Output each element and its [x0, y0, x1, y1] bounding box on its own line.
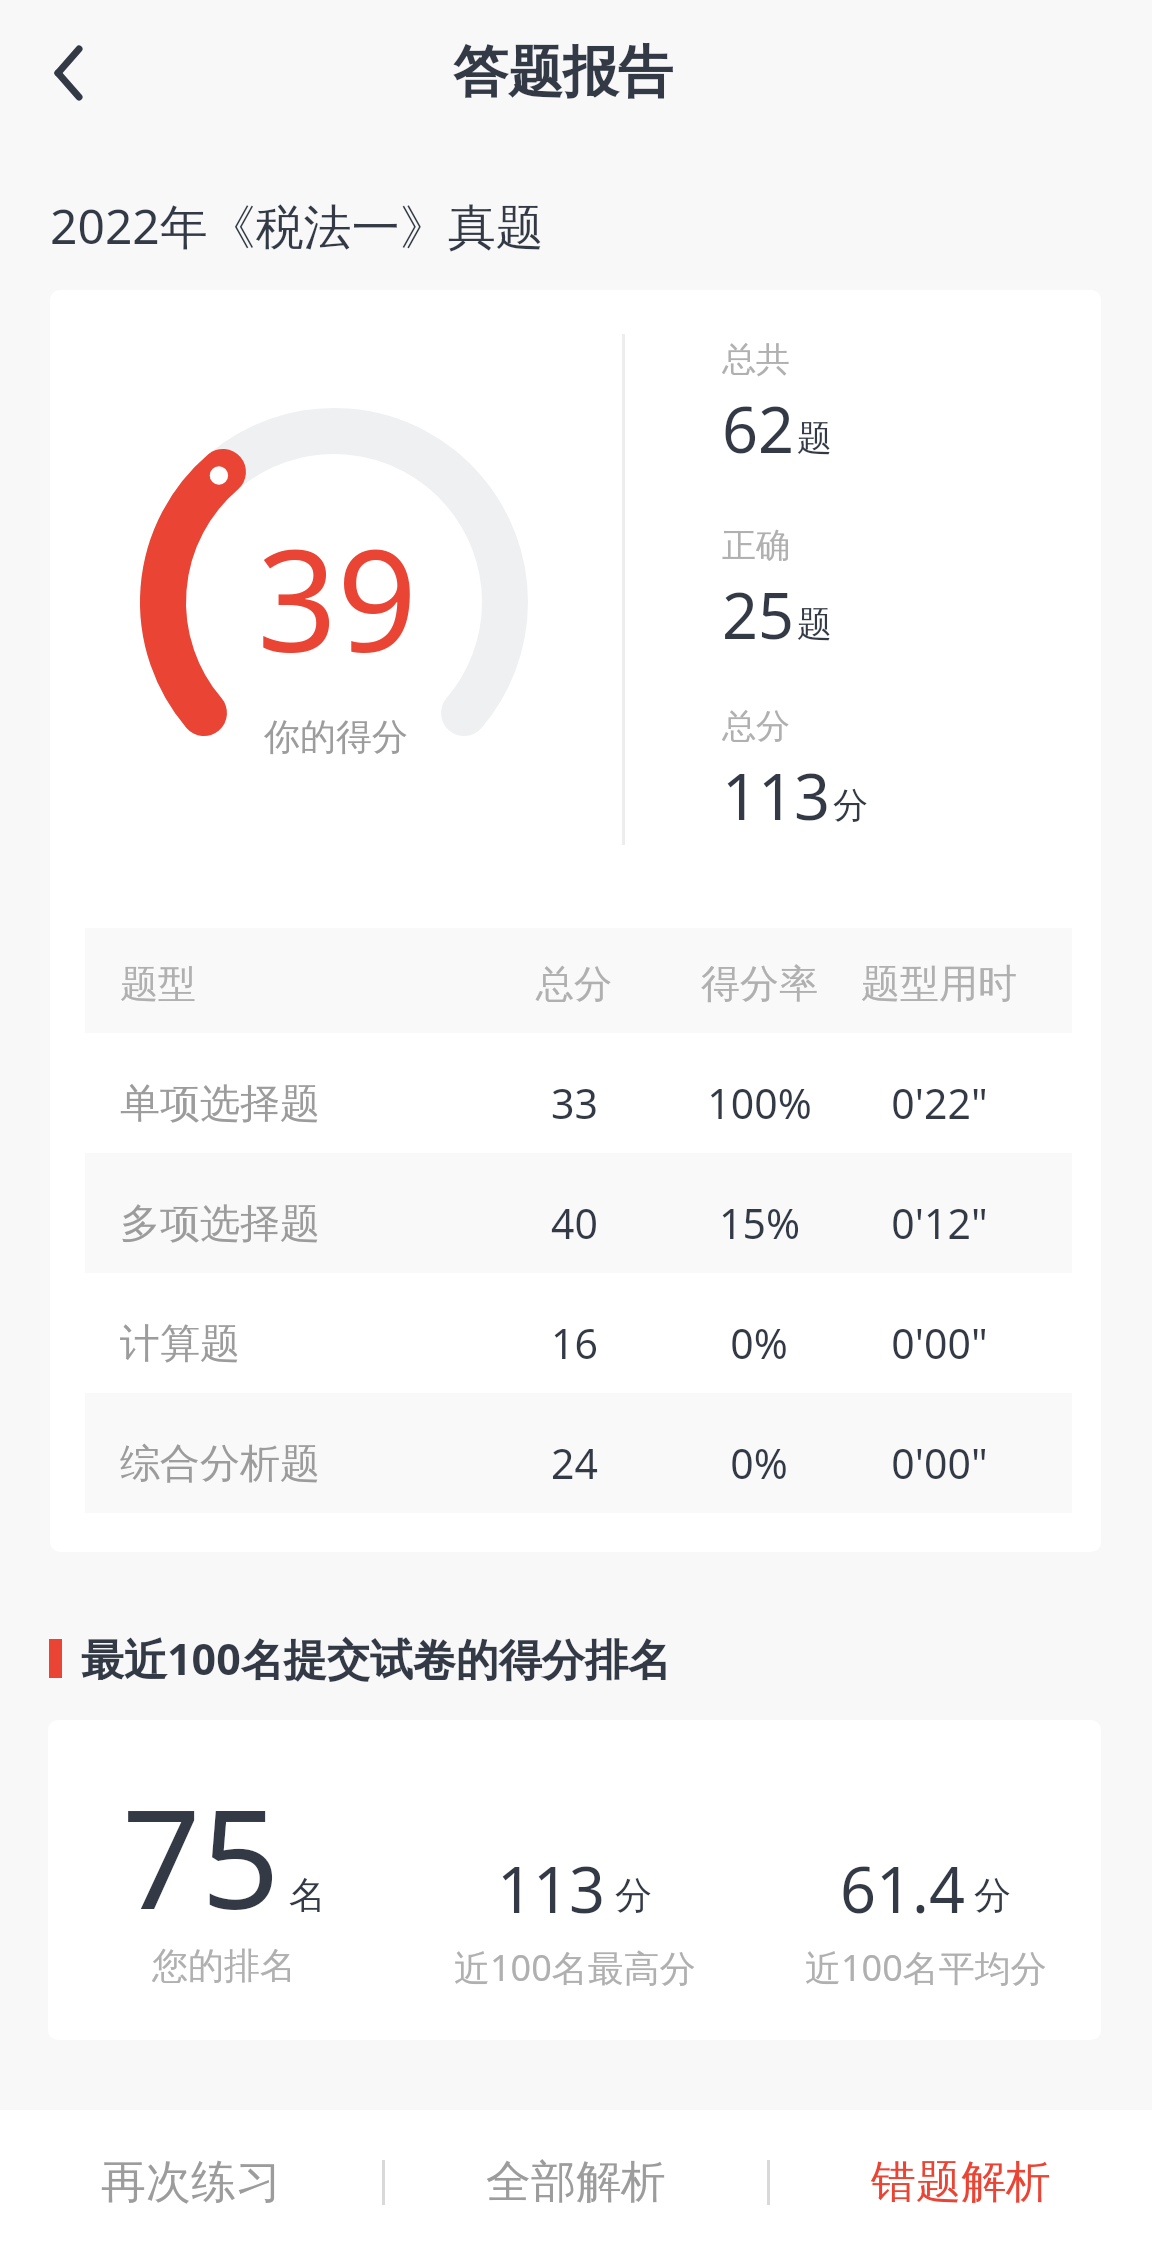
- staticText: 24: [551, 1435, 598, 1491]
- staticText: 综合分析题: [120, 1438, 320, 1488]
- staticText: 总共: [722, 338, 790, 381]
- staticText: 题型用时: [861, 959, 1017, 1008]
- staticText: 33: [551, 1075, 598, 1131]
- staticText: 得分率: [701, 959, 818, 1008]
- staticText: 0'00": [891, 1435, 988, 1491]
- staticText: 39: [257, 502, 418, 693]
- staticText: 再次练习: [101, 2154, 281, 2211]
- staticText: 113: [497, 1846, 606, 1932]
- staticText: 多项选择题: [120, 1198, 320, 1248]
- staticText: 0'12": [891, 1195, 988, 1251]
- staticText: 总分: [722, 705, 790, 748]
- button[interactable]: 全部解析: [385, 2110, 767, 2254]
- staticText: 16: [551, 1315, 598, 1371]
- staticText: 0'22": [891, 1075, 988, 1131]
- staticText: 全部解析: [486, 2154, 666, 2211]
- staticText: 您的排名: [152, 1943, 296, 1988]
- staticText: 最近100名提交试卷的得分排名: [81, 1629, 671, 1688]
- button[interactable]: Back: [22, 23, 122, 123]
- button[interactable]: 错题解析: [770, 2110, 1152, 2254]
- staticText: 100%: [707, 1075, 812, 1131]
- staticText: 40: [551, 1195, 598, 1251]
- staticText: 正确: [722, 524, 790, 567]
- staticText: 单项选择题: [120, 1078, 320, 1128]
- staticText: 分: [615, 1872, 652, 1919]
- staticText: 0%: [730, 1435, 788, 1491]
- staticText: 62: [722, 386, 795, 472]
- button[interactable]: 再次练习: [0, 2110, 382, 2254]
- staticText: 25: [722, 572, 795, 658]
- staticText: 你的得分: [264, 714, 408, 759]
- staticText: 0%: [730, 1315, 788, 1371]
- staticText: 题: [797, 416, 832, 460]
- staticText: 75: [122, 1761, 280, 1949]
- staticText: 题型: [120, 960, 196, 1008]
- staticText: 近100名平均分: [805, 1943, 1047, 1992]
- staticText: 总分: [536, 960, 612, 1008]
- staticText: 近100名最高分: [454, 1943, 696, 1992]
- staticText: 计算题: [120, 1318, 240, 1368]
- staticText: 分: [833, 783, 868, 827]
- staticText: 15%: [719, 1195, 800, 1251]
- staticText: 61.4: [840, 1846, 965, 1932]
- staticText: 答题报告: [453, 38, 673, 107]
- staticText: 0'00": [891, 1315, 988, 1371]
- staticText: 题: [797, 602, 832, 646]
- staticText: 2022年《税法一》真题: [50, 193, 544, 259]
- staticText: 分: [974, 1872, 1011, 1919]
- staticText: 113: [722, 753, 831, 839]
- staticText: 错题解析: [871, 2154, 1051, 2211]
- staticText: 名: [289, 1872, 326, 1919]
